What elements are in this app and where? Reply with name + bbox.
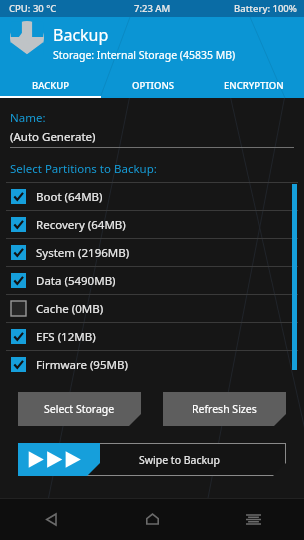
staticText: Firmware (95MB) [36,357,128,373]
staticText: 7:23 AM [134,2,171,15]
button[interactable]: BACKUP [0,72,102,98]
staticText: EFS (12MB) [36,329,96,345]
button[interactable]: (Auto Generate) [10,129,294,148]
staticText: (Auto Generate) [10,129,96,145]
staticText: OPTIONS [132,79,174,92]
staticText: Swipe to Backup [139,453,221,467]
staticText: Data (5490MB) [36,273,116,289]
button[interactable]: Back [0,498,102,540]
button[interactable]: Menu [203,498,304,540]
staticText: Battery: 100% [234,2,297,15]
button[interactable]: System (2196MB) [0,239,304,266]
staticText: Refresh Sizes [192,402,257,416]
staticText: Storage: Internal Storage (45835 MB) [53,48,236,62]
button[interactable]: Select Storage [18,392,141,426]
staticText: CPU: 30 °C [9,2,57,15]
button[interactable]: Firmware (95MB) [0,351,304,378]
button[interactable]: Home [102,498,203,540]
button[interactable]: Refresh Sizes [163,392,286,426]
staticText: Select Partitions to Backup: [10,161,157,177]
staticText: Recovery (64MB) [36,217,126,233]
staticText: BACKUP [32,79,70,92]
button[interactable]: EFS (12MB) [0,323,304,350]
button[interactable]: Cache (0MB) [0,295,304,322]
button[interactable]: ENCRYPTION [203,72,304,98]
staticText: Boot (64MB) [36,189,103,205]
staticText: ENCRYPTION [224,79,284,92]
button[interactable]: OPTIONS [102,72,203,98]
button[interactable]: Data (5490MB) [0,267,304,294]
staticText: Cache (0MB) [36,301,104,317]
staticText: Backup [53,24,109,46]
button[interactable]: Boot (64MB) [0,183,304,210]
staticText: Name: [10,110,46,126]
staticText: Select Storage [44,402,115,416]
staticText: System (2196MB) [36,245,130,261]
button[interactable]: Swipe to Backup [18,443,286,476]
button[interactable]: Recovery (64MB) [0,211,304,238]
